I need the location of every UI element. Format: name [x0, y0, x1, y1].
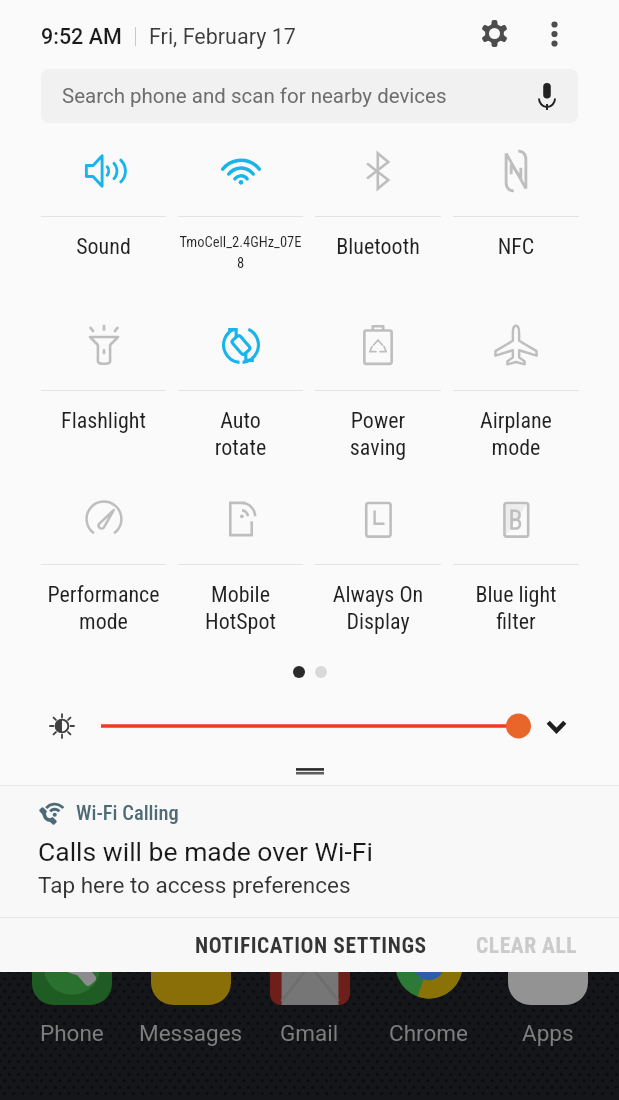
button[interactable]: Brightness: [49, 713, 75, 739]
button[interactable]: Search phone and scan for nearby devices: [41, 69, 578, 123]
button[interactable]: Sound: [35, 123, 172, 260]
staticText: Always On Display: [309, 582, 447, 634]
button[interactable]: Messages: [138, 925, 243, 1046]
button[interactable]: Expand brightness options: [539, 709, 573, 743]
staticText: Phone: [40, 1020, 104, 1046]
staticText: Power saving: [309, 408, 447, 460]
staticText: Tap here to access preferences: [38, 872, 351, 898]
staticText: TmoCell_2.4GHz_07E 8: [172, 234, 309, 271]
staticText: Messages: [139, 1020, 243, 1046]
staticText: Chrome: [389, 1020, 468, 1046]
staticText: NOTIFICATION SETTINGS: [195, 933, 427, 958]
staticText: 9:52 AM: [41, 24, 122, 49]
staticText: Gmail: [280, 1020, 339, 1046]
staticText: CLEAR ALL: [476, 933, 578, 958]
button[interactable]: Flashlight: [35, 297, 172, 434]
staticText: Calls will be made over Wi-Fi: [38, 836, 373, 867]
staticText: Blue light filter: [447, 582, 585, 634]
staticText: Bluetooth: [309, 234, 447, 260]
button[interactable]: CLEAR ALL: [466, 921, 588, 970]
staticText: Wi-Fi Calling: [76, 801, 179, 825]
button[interactable]: Chrome: [376, 925, 481, 1046]
button[interactable]: Blue light filter: [447, 471, 585, 634]
staticText: Search phone and scan for nearby devices: [62, 84, 447, 108]
button[interactable]: NOTIFICATION SETTINGS: [185, 921, 437, 970]
button[interactable]: Voice search: [530, 79, 564, 113]
button[interactable]: More options: [534, 17, 574, 57]
button[interactable]: Airplane mode: [447, 297, 585, 460]
button[interactable]: TmoCell_2.4GHz_07E 8: [172, 123, 309, 271]
staticText: Sound: [35, 234, 172, 260]
button[interactable]: Settings: [475, 14, 521, 60]
staticText: Flashlight: [35, 408, 172, 434]
button[interactable]: Bluetooth: [309, 123, 447, 260]
button[interactable]: NFC: [447, 123, 585, 260]
button[interactable]: Power saving: [309, 297, 447, 460]
button[interactable]: Performance mode: [35, 471, 172, 634]
staticText: Performance mode: [35, 582, 172, 634]
button[interactable]: Auto rotate: [172, 297, 309, 460]
button[interactable]: Wi-Fi Calling: [0, 786, 619, 917]
staticText: Airplane mode: [447, 408, 585, 460]
staticText: Apps: [522, 1020, 574, 1046]
button[interactable]: Gmail: [257, 925, 362, 1046]
button[interactable]: Phone: [19, 925, 124, 1046]
staticText: NFC: [447, 234, 585, 260]
button[interactable]: Mobile HotSpot: [172, 471, 309, 634]
staticText: Fri, February 17: [149, 24, 296, 49]
button[interactable]: Brightness slider: [101, 706, 531, 746]
button[interactable]: Always On Display: [309, 471, 447, 634]
staticText: Mobile HotSpot: [172, 582, 309, 634]
staticText: Auto rotate: [172, 408, 309, 460]
button[interactable]: Apps: [495, 925, 600, 1046]
